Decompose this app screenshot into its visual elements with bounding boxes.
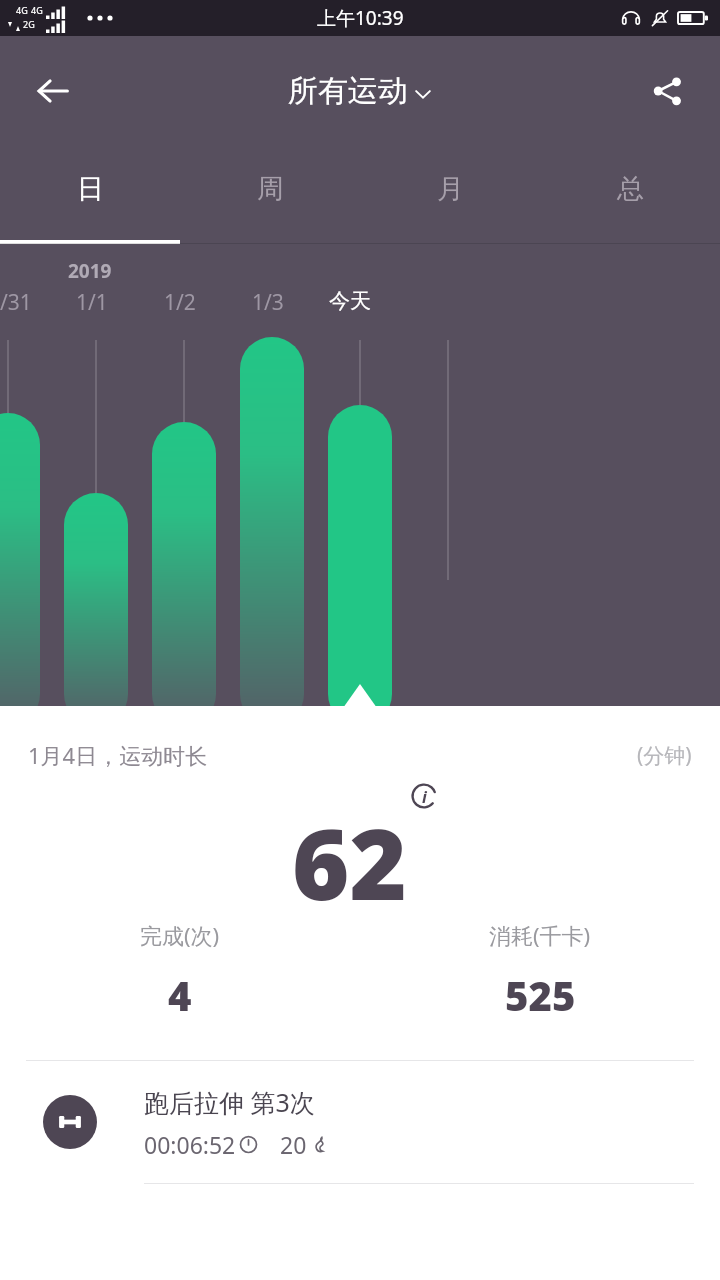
staticText: 2019 [68, 258, 112, 284]
button[interactable]: 总 [540, 146, 720, 244]
staticText: 4G [31, 4, 43, 16]
staticText: 周 [257, 172, 284, 206]
staticText: 2G [23, 18, 35, 30]
staticText: 日 [77, 172, 104, 206]
button[interactable]: 跑后拉伸 第3次 [0, 1061, 720, 1183]
button[interactable]: 分享 [638, 62, 696, 120]
staticText: 所有运动 [288, 72, 408, 110]
staticText: 62 [292, 795, 407, 928]
staticText: 4G [16, 4, 28, 16]
staticText: 1/1 [76, 288, 108, 317]
staticText: 00:06:52 [144, 1129, 236, 1160]
staticText: 消耗(千卡) [489, 920, 591, 950]
staticText: 1月4日，运动时长 [28, 740, 208, 770]
staticText: 完成(次) [140, 920, 220, 950]
button[interactable]: 返回 [22, 60, 84, 122]
staticText: 跑后拉伸 第3次 [144, 1085, 315, 1119]
button[interactable]: 说明 [407, 779, 441, 813]
staticText: 1/2 [164, 288, 196, 317]
staticText: 20 [280, 1129, 307, 1160]
staticText: (分钟) [637, 741, 692, 770]
staticText: 2/31 [0, 288, 32, 317]
button[interactable]: 周 [180, 146, 360, 244]
staticText: 525 [505, 968, 576, 1022]
staticText: 今天 [329, 288, 371, 314]
staticText: 月 [437, 172, 464, 206]
staticText: i [422, 786, 427, 808]
button[interactable]: 完成(次) [0, 920, 360, 1022]
button[interactable]: 所有运动 [278, 66, 442, 116]
staticText: 1/3 [252, 288, 284, 317]
button[interactable]: 消耗(千卡) [360, 920, 720, 1022]
staticText: 4 [168, 968, 192, 1022]
button[interactable]: 月 [360, 146, 540, 244]
button[interactable]: 日 [0, 146, 180, 244]
staticText: 上午10:39 [317, 5, 404, 31]
staticText: 总 [617, 172, 644, 206]
